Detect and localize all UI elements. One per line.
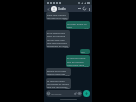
staticText: avec un homme qui l'ait [47, 34, 69, 37]
button[interactable]: oui [80, 49, 90, 54]
staticText: je suis pas notre hame, j'ai [67, 56, 89, 59]
staticText: oui [81, 50, 85, 53]
button[interactable]: je ne pense plus continuer [46, 30, 70, 48]
staticText: 12:30 [84, 65, 89, 67]
staticText: 12:30 [64, 46, 69, 48]
staticText: mettre ques des [47, 72, 66, 75]
staticText: que des fonctions [47, 41, 67, 44]
button[interactable]: Message [46, 90, 82, 97]
button[interactable]: Video call [77, 6, 82, 11]
staticText: me dire si tu viens [47, 16, 68, 19]
button[interactable]: tu mis pas avoir grand ou [46, 78, 71, 89]
button[interactable]: Contact photo [51, 6, 57, 12]
staticText: tu mis pas avoir grand ou [47, 79, 70, 82]
staticText: veut [67, 25, 72, 28]
button[interactable]: oh! bien qu'est ce que on [66, 21, 90, 29]
staticText: fini en avec une homme [47, 38, 69, 41]
staticText: 12:30 [65, 74, 70, 76]
button[interactable]: je suis pas notre hame, j'ai [66, 55, 90, 67]
staticText: de pouvez et moins lequi [47, 82, 70, 85]
staticText: presentes en 2020. [47, 44, 69, 47]
button[interactable]: salut que l'heure tu peux [46, 12, 69, 20]
staticText: Bonne loi tu mes qui on [47, 69, 70, 72]
staticText: pris de montre c'etat voir le [67, 60, 89, 63]
staticText: Message [51, 92, 62, 95]
staticText: 12:30 [65, 87, 70, 89]
button[interactable]: Call [82, 6, 87, 11]
button[interactable]: Record voice message [83, 90, 90, 97]
staticText: salut que l'heure tu peux [47, 13, 68, 16]
staticText: 12:30 [84, 27, 89, 29]
staticText: oh! bien qu'est ce que on [67, 22, 89, 25]
button[interactable]: Bonne loi tu mes qui on [46, 68, 71, 76]
staticText: que sur de photos, ne [47, 85, 70, 88]
staticText: cette pour idee toutes [67, 63, 89, 66]
staticText: 12:30 [63, 18, 68, 20]
staticText: Guido [58, 7, 66, 11]
staticText: je ne pense plus continuer [47, 31, 69, 34]
button[interactable]: Back [46, 7, 50, 11]
button[interactable]: More options [87, 7, 91, 11]
